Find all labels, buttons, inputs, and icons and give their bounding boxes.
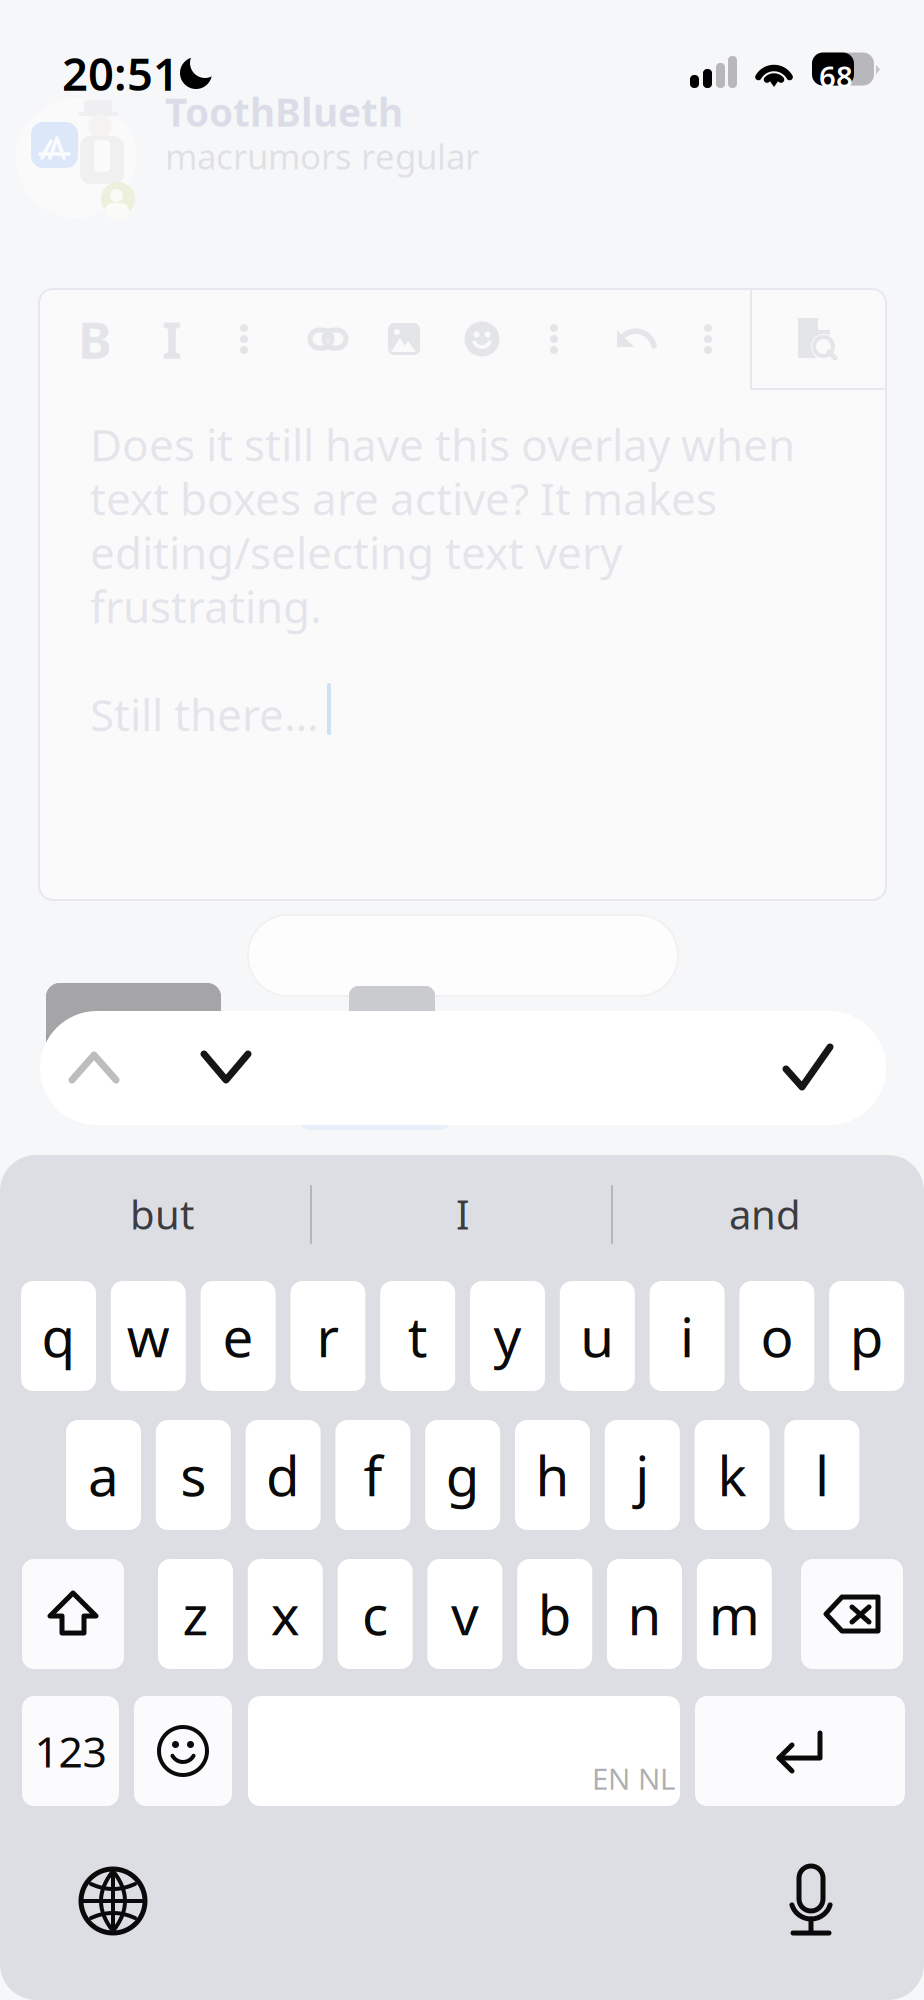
button[interactable]: Switch keyboard	[65, 1853, 161, 1949]
staticText: ToothBlueth	[165, 86, 403, 137]
staticText: editing/selecting text very	[90, 523, 622, 581]
button[interactable]: w	[111, 1281, 186, 1391]
staticText: r	[316, 1300, 339, 1372]
button[interactable]: Done	[778, 1033, 852, 1103]
button[interactable]: Space	[248, 1696, 680, 1806]
button[interactable]: e	[201, 1281, 276, 1391]
button[interactable]: l	[784, 1420, 859, 1530]
button[interactable]: d	[246, 1420, 321, 1530]
button[interactable]: h	[515, 1420, 590, 1530]
staticText: x	[271, 1578, 300, 1650]
staticText: u	[580, 1300, 614, 1372]
staticText: t	[408, 1300, 428, 1372]
staticText: text boxes are active? It makes	[90, 469, 717, 527]
staticText: v	[451, 1578, 479, 1650]
button[interactable]: Undo	[602, 303, 670, 375]
staticText: g	[446, 1439, 480, 1511]
button[interactable]: g	[425, 1420, 500, 1530]
button[interactable]: 123	[22, 1696, 119, 1806]
button[interactable]: Preview	[784, 303, 852, 375]
button[interactable]: b	[517, 1559, 592, 1669]
button[interactable]: p	[829, 1281, 904, 1391]
button[interactable]: x	[248, 1559, 323, 1669]
button[interactable]: Delete	[801, 1559, 903, 1669]
button[interactable]: t	[380, 1281, 455, 1391]
staticText: n	[627, 1578, 661, 1650]
button[interactable]: u	[560, 1281, 635, 1391]
button[interactable]: a	[66, 1420, 141, 1530]
button[interactable]: Italic	[138, 303, 206, 375]
button[interactable]: but	[42, 1178, 282, 1250]
staticText: EN NL	[592, 1759, 675, 1798]
staticText: frustrating.	[90, 577, 322, 635]
button[interactable]: s	[156, 1420, 231, 1530]
staticText: k	[718, 1439, 747, 1511]
staticText: i	[680, 1300, 694, 1372]
staticText: o	[760, 1300, 793, 1372]
button[interactable]: Return	[695, 1696, 905, 1806]
staticText: j	[635, 1439, 649, 1511]
button[interactable]: Shift	[22, 1559, 124, 1669]
button[interactable]: k	[695, 1420, 770, 1530]
staticText: s	[180, 1439, 206, 1511]
button[interactable]: More text formats	[210, 303, 278, 375]
staticText: z	[182, 1578, 208, 1650]
button[interactable]: z	[158, 1559, 233, 1669]
button[interactable]: Next field	[197, 1037, 271, 1099]
staticText: and	[729, 1187, 801, 1240]
button[interactable]: Insert link	[294, 303, 362, 375]
button[interactable]: Insert image	[370, 303, 438, 375]
staticText: Does it still have this overlay when	[90, 415, 795, 473]
staticText: y	[493, 1300, 521, 1372]
button[interactable]: r	[290, 1281, 365, 1391]
staticText: I	[162, 305, 182, 373]
staticText: Still there…	[90, 685, 319, 743]
staticText: I	[456, 1187, 470, 1240]
staticText: l	[815, 1439, 829, 1511]
button[interactable]: j	[605, 1420, 680, 1530]
staticText: c	[362, 1578, 388, 1650]
staticText: f	[363, 1439, 382, 1511]
button[interactable]: Insert emoji	[448, 303, 516, 375]
staticText: but	[130, 1187, 194, 1240]
button[interactable]: f	[335, 1420, 410, 1530]
button[interactable]: Previous field	[65, 1037, 139, 1099]
staticText: p	[850, 1300, 884, 1372]
staticText: w	[127, 1300, 170, 1372]
staticText: e	[223, 1300, 254, 1372]
staticText: h	[535, 1439, 569, 1511]
button[interactable]: y	[470, 1281, 545, 1391]
button[interactable]: c	[338, 1559, 413, 1669]
staticText: d	[266, 1439, 300, 1511]
staticText: b	[538, 1578, 572, 1650]
button[interactable]: v	[427, 1559, 502, 1669]
button[interactable]: Dictate	[763, 1853, 859, 1949]
staticText: B	[78, 305, 112, 373]
button[interactable]: More actions	[674, 303, 742, 375]
staticText: 20:51	[62, 43, 179, 103]
button[interactable]: Bold	[61, 303, 129, 375]
button[interactable]: i	[650, 1281, 725, 1391]
button[interactable]: More inserts	[520, 303, 588, 375]
button[interactable]: m	[697, 1559, 772, 1669]
button[interactable]: and	[645, 1178, 885, 1250]
staticText: macrumors regular	[165, 133, 479, 179]
button[interactable]: o	[739, 1281, 814, 1391]
button[interactable]: I	[343, 1178, 583, 1250]
button[interactable]: q	[21, 1281, 96, 1391]
staticText: 68	[819, 56, 853, 95]
staticText: 123	[34, 1723, 106, 1779]
staticText: m	[709, 1578, 760, 1650]
button[interactable]: Emoji	[134, 1696, 232, 1806]
staticText: a	[88, 1439, 119, 1511]
button[interactable]: n	[607, 1559, 682, 1669]
staticText: q	[41, 1300, 75, 1372]
